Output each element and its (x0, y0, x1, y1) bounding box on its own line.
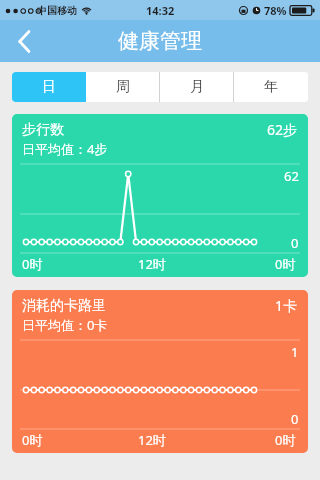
staticText: 0 (291, 410, 299, 428)
button[interactable]: 日 (12, 72, 86, 102)
staticText: 0时 (275, 255, 296, 273)
button[interactable]: 返回 (0, 20, 48, 62)
staticText: 62步 (267, 120, 298, 139)
staticText: 1 (291, 343, 299, 361)
staticText: 14:32 (146, 3, 175, 18)
staticText: 12时 (138, 255, 166, 273)
staticText: 中国移动 (37, 4, 77, 17)
button[interactable]: 年 (234, 72, 308, 102)
staticText: 周 (116, 78, 130, 96)
staticText: 日平均值：4步 (22, 140, 108, 158)
staticText: 0时 (22, 431, 43, 449)
staticText: 日平均值：0卡 (22, 316, 108, 334)
staticText: 1卡 (275, 296, 298, 315)
button[interactable]: 消耗的卡路里 (12, 290, 308, 453)
staticText: 78% (264, 3, 287, 18)
button[interactable]: 周 (86, 72, 160, 102)
staticText: 步行数 (22, 121, 64, 139)
staticText: 0时 (275, 431, 296, 449)
staticText: 年 (264, 78, 278, 96)
staticText: 月 (190, 78, 204, 96)
staticText: 日 (42, 78, 56, 96)
staticText: 0 (291, 234, 299, 252)
button[interactable]: 月 (160, 72, 234, 102)
staticText: 12时 (138, 431, 166, 449)
staticText: 0时 (22, 255, 43, 273)
staticText: 健康管理 (118, 28, 202, 54)
staticText: 消耗的卡路里 (22, 297, 106, 315)
staticText: 62 (284, 167, 299, 185)
button[interactable]: 步行数 (12, 114, 308, 277)
